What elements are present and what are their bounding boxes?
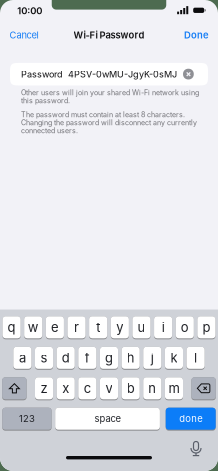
button[interactable]: w bbox=[24, 316, 42, 339]
button[interactable]: Shift bbox=[2, 377, 27, 400]
button[interactable]: h bbox=[122, 347, 140, 370]
staticText: z bbox=[40, 381, 47, 396]
staticText: b bbox=[127, 381, 135, 396]
staticText: c bbox=[84, 381, 91, 396]
button[interactable]: Delete bbox=[191, 377, 216, 400]
staticText: j bbox=[151, 350, 154, 365]
button[interactable]: Cancel bbox=[10, 29, 39, 40]
button[interactable]: t bbox=[89, 316, 107, 339]
staticText: y bbox=[116, 320, 123, 335]
staticText: p bbox=[202, 320, 210, 335]
button[interactable]: o bbox=[176, 316, 194, 339]
staticText: g bbox=[105, 350, 113, 365]
staticText: r bbox=[74, 320, 79, 335]
button[interactable]: done bbox=[166, 408, 216, 431]
button[interactable]: g bbox=[100, 347, 118, 370]
staticText: Done bbox=[184, 29, 209, 41]
button[interactable]: x bbox=[57, 377, 75, 400]
staticText: 4PSV-0wMU-JgyK-0sMJ bbox=[68, 69, 177, 79]
button[interactable]: e bbox=[46, 316, 64, 339]
staticText: s bbox=[41, 350, 48, 365]
button[interactable]: z bbox=[35, 377, 53, 400]
button[interactable]: p bbox=[197, 316, 215, 339]
staticText: w bbox=[28, 320, 39, 335]
staticText: 123 bbox=[19, 413, 35, 424]
staticText: v bbox=[105, 381, 112, 396]
button[interactable]: v bbox=[100, 377, 118, 400]
button[interactable]: Password bbox=[10, 63, 208, 85]
staticText: 10:00 bbox=[17, 5, 42, 16]
staticText: u bbox=[137, 320, 145, 335]
button[interactable]: space bbox=[55, 408, 160, 431]
button[interactable]: n bbox=[143, 377, 161, 400]
staticText: x bbox=[62, 381, 69, 396]
button[interactable]: l bbox=[187, 347, 205, 370]
button[interactable]: k bbox=[165, 347, 183, 370]
staticText: k bbox=[170, 350, 177, 365]
staticText: done bbox=[179, 413, 202, 424]
staticText: t bbox=[96, 320, 100, 335]
button[interactable]: i bbox=[154, 316, 172, 339]
staticText: o bbox=[181, 320, 189, 335]
staticText: i bbox=[162, 320, 165, 335]
button[interactable]: q bbox=[2, 316, 21, 339]
button[interactable]: u bbox=[132, 316, 150, 339]
staticText: e bbox=[51, 320, 59, 335]
staticText: Wi-Fi Password bbox=[73, 29, 144, 41]
button[interactable]: s bbox=[35, 347, 53, 370]
staticText: l bbox=[194, 350, 197, 365]
button[interactable]: a bbox=[13, 347, 31, 370]
button[interactable]: m bbox=[165, 377, 183, 400]
staticText: Password bbox=[21, 69, 63, 79]
button[interactable]: j bbox=[143, 347, 161, 370]
button[interactable]: Dictation bbox=[189, 441, 203, 457]
staticText: a bbox=[19, 350, 26, 365]
button[interactable]: r bbox=[67, 316, 86, 339]
staticText: The password must contain at least 8 cha… bbox=[21, 111, 197, 135]
button[interactable]: y bbox=[111, 316, 129, 339]
staticText: n bbox=[148, 381, 156, 396]
button[interactable]: 123 bbox=[2, 408, 52, 431]
staticText: f bbox=[85, 350, 90, 365]
staticText: space bbox=[94, 413, 120, 424]
staticText: d bbox=[62, 350, 70, 365]
staticText: q bbox=[8, 320, 16, 335]
staticText: Cancel bbox=[10, 29, 39, 40]
button[interactable]: Done bbox=[184, 29, 209, 41]
button[interactable]: d bbox=[57, 347, 75, 370]
staticText: m bbox=[168, 381, 179, 396]
button[interactable]: Clear text bbox=[183, 69, 194, 80]
button[interactable]: f bbox=[78, 347, 96, 370]
button[interactable]: b bbox=[122, 377, 140, 400]
button[interactable]: c bbox=[78, 377, 96, 400]
staticText: h bbox=[127, 350, 135, 365]
staticText: Other users will join your shared Wi-Fi … bbox=[21, 89, 199, 105]
